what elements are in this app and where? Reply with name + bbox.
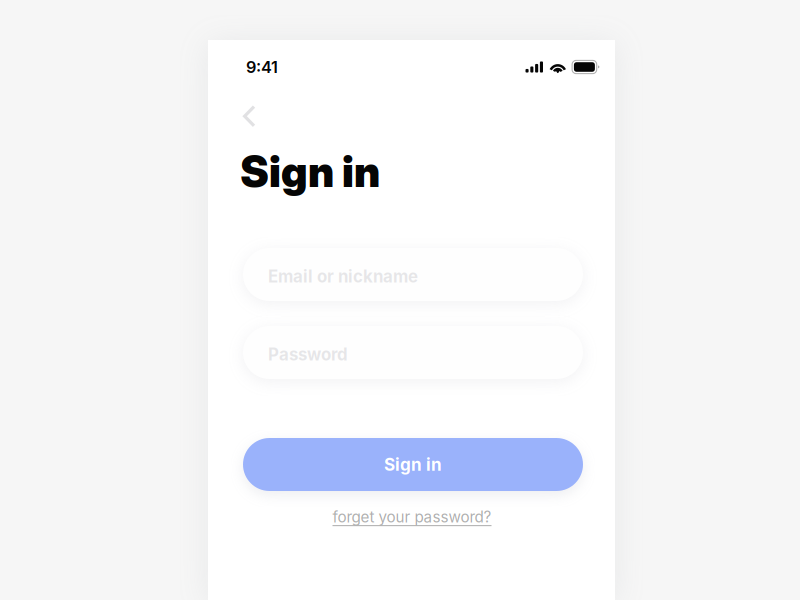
button[interactable]: Sign in: [243, 438, 583, 491]
button[interactable]: Password: [243, 326, 583, 379]
staticText: Password: [268, 344, 348, 365]
staticText: Sign in: [384, 454, 442, 475]
staticText: 9:41: [246, 57, 278, 77]
staticText: forget your password?: [332, 508, 491, 526]
staticText: Sign in: [240, 146, 380, 197]
button[interactable]: forget your password?: [322, 505, 502, 529]
button[interactable]: Email or nickname: [243, 248, 583, 301]
staticText: Email or nickname: [268, 266, 418, 287]
button[interactable]: Back: [232, 94, 267, 138]
